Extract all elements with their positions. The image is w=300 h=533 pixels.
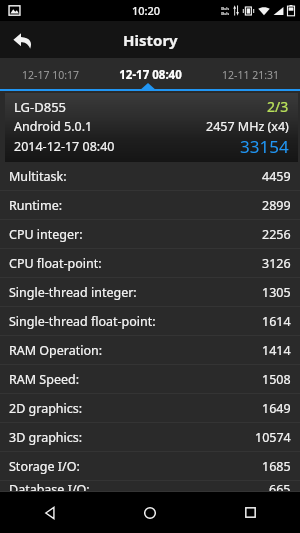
staticText: 12-17 10:17 [22, 68, 79, 82]
staticText: 0b/s [221, 11, 230, 16]
staticText: RAM Speed: [9, 371, 80, 388]
button[interactable]: 12-17 08:40 [100, 58, 200, 91]
staticText: 4459 [262, 168, 291, 185]
staticText: Runtime: [9, 197, 63, 214]
staticText: 665 [269, 481, 291, 492]
button[interactable]: 12-11 21:31 [200, 58, 300, 91]
button[interactable]: Single-thread integer: [0, 278, 300, 307]
staticText: 1649 [262, 400, 291, 417]
staticText: Multitask: [9, 168, 67, 185]
staticText: 0b/s [221, 6, 230, 11]
button[interactable]: 3D graphics: [0, 423, 300, 452]
staticText: History [123, 30, 178, 50]
staticText: 12-11 21:31 [222, 68, 279, 82]
staticText: 2457 MHz (x4) [206, 118, 289, 135]
button[interactable]: Database I/O: [0, 481, 300, 492]
staticText: CPU float-point: [9, 255, 102, 272]
staticText: Storage I/O: [9, 458, 80, 475]
button[interactable]: RAM Operation: [0, 336, 300, 365]
button[interactable]: Home [100, 492, 200, 533]
staticText: Android 5.0.1 [14, 118, 93, 135]
staticText: 1414 [262, 342, 291, 359]
staticText: 10:20 [132, 3, 161, 18]
button[interactable]: Multitask: [0, 162, 300, 191]
button[interactable]: Back [0, 492, 100, 533]
button[interactable]: Storage I/O: [0, 452, 300, 481]
staticText: 1508 [262, 371, 291, 388]
staticText: 3126 [262, 255, 291, 272]
button[interactable]: Recents [200, 492, 300, 533]
staticText: 2/3 [267, 97, 289, 116]
button[interactable]: 2D graphics: [0, 394, 300, 423]
staticText: 2014-12-17 08:40 [14, 138, 115, 155]
staticText: Single-thread float-point: [9, 313, 156, 330]
button[interactable]: CPU integer: [0, 220, 300, 249]
staticText: 3D graphics: [9, 429, 83, 446]
staticText: Single-thread integer: [9, 284, 137, 301]
staticText: 10574 [255, 429, 291, 446]
staticText: LG-D855 [14, 98, 67, 116]
staticText: 2899 [262, 197, 291, 214]
button[interactable]: Single-thread float-point: [0, 307, 300, 336]
staticText: CPU integer: [9, 226, 83, 243]
button[interactable]: CPU float-point: [0, 249, 300, 278]
button[interactable]: LG-D855 [5, 93, 298, 162]
button[interactable]: Back [6, 23, 40, 57]
staticText: 2D graphics: [9, 400, 83, 417]
staticText: 1685 [262, 458, 291, 475]
button[interactable]: Runtime: [0, 191, 300, 220]
staticText: 1614 [262, 313, 291, 330]
staticText: 33154 [240, 135, 289, 157]
staticText: 1305 [262, 284, 291, 301]
button[interactable]: RAM Speed: [0, 365, 300, 394]
staticText: RAM Operation: [9, 342, 103, 359]
staticText: Database I/O: [9, 481, 90, 492]
staticText: 12-17 08:40 [119, 67, 182, 83]
button[interactable]: 12-17 10:17 [0, 58, 100, 91]
staticText: 2256 [262, 226, 291, 243]
